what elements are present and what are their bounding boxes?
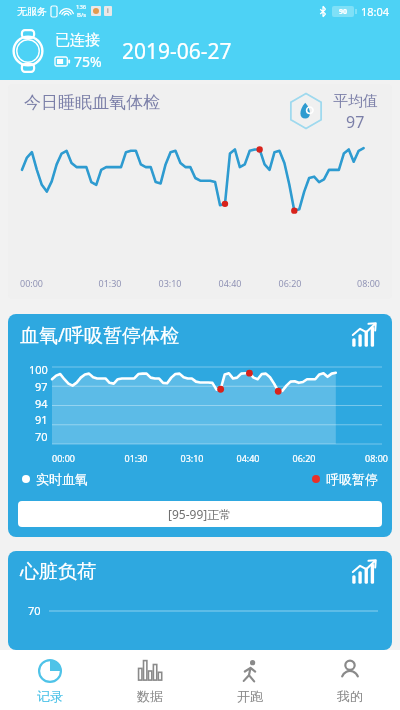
staticText: i [107,6,109,16]
button[interactable]: 开跑 [200,650,300,710]
staticText: 91 [35,412,48,427]
button[interactable]: 记录 [0,650,100,710]
staticText: 06:20 [276,452,332,464]
staticText: 已连接 [55,31,100,50]
staticText: 08:00 [320,277,380,289]
staticText: 2019-06-27 [122,37,232,66]
staticText: 136 [76,3,87,11]
staticText: 03:10 [164,452,220,464]
button[interactable]: 血氧/呼吸暂停体检 [8,314,392,537]
staticText: 03:10 [140,277,200,289]
staticText: 90 [339,7,348,16]
button[interactable]: 今日睡眠血氧体检 [8,84,392,299]
staticText: 01:30 [108,452,164,464]
staticText: 04:40 [200,277,260,289]
staticText: 100 [29,362,48,377]
button[interactable]: 数据 [100,650,200,710]
staticText: 00:00 [20,277,80,289]
staticText: 血氧/呼吸暂停体检 [20,322,180,348]
staticText: 00:00 [52,452,108,464]
staticText: 无服务 [17,5,47,18]
staticText: 06:20 [260,277,320,289]
button[interactable]: 我的 [300,650,400,710]
staticText: 94 [35,396,48,411]
staticText: B/s [77,11,87,19]
staticText: 08:00 [332,452,388,464]
staticText: 01:30 [80,277,140,289]
button[interactable]: 心脏负荷 [8,551,392,650]
staticText: 70 [35,429,48,444]
staticText: 记录 [37,688,63,704]
button[interactable]: [95-99]正常 [18,501,382,527]
staticText: 18:04 [361,4,390,19]
staticText: 75% [74,52,102,71]
staticText: 70 [28,603,41,618]
staticText: 呼吸暂停 [326,471,378,487]
staticText: 实时血氧 [36,471,88,487]
staticText: [95-99]正常 [168,506,232,522]
staticText: 97 [35,379,48,394]
staticText: 97 [346,111,365,133]
other: Chart [350,321,378,349]
staticText: 开跑 [237,688,263,704]
staticText: 我的 [337,688,363,704]
staticText: 数据 [137,688,163,704]
staticText: 今日睡眠血氧体检 [24,92,160,113]
staticText: 心脏负荷 [20,560,96,584]
staticText: 04:40 [220,452,276,464]
other: Chart [350,558,378,586]
staticText: 平均值 [333,92,378,111]
